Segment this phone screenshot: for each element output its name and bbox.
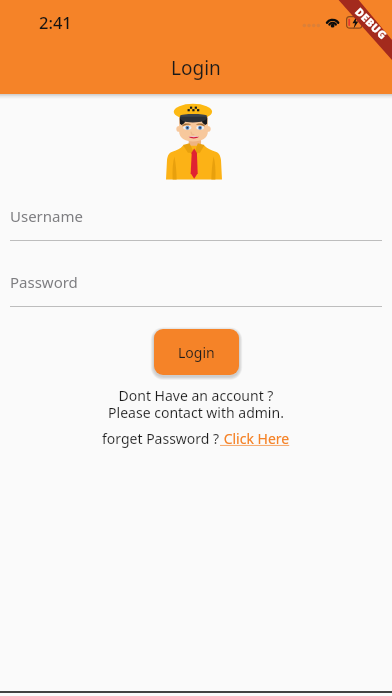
button[interactable]: Login: [154, 329, 239, 375]
staticText: 2:41: [39, 11, 72, 33]
staticText: forget Password ?: [102, 429, 220, 448]
staticText: DEBUG: [352, 4, 391, 43]
staticText: Username: [10, 206, 83, 226]
staticText: Click Here: [220, 429, 290, 448]
staticText: Login: [178, 343, 215, 362]
button[interactable]: Click Here: [220, 429, 290, 448]
staticText: Dont Have an account ? Please contact wi…: [0, 386, 392, 422]
staticText: Login: [171, 55, 221, 81]
staticText: Password: [10, 272, 78, 292]
